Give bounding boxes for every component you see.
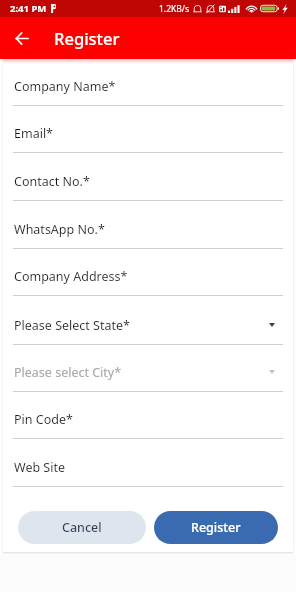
button[interactable]: Register (154, 511, 278, 544)
button[interactable]: Please Select State* (13, 59, 283, 345)
staticText: Company Address* (14, 268, 128, 285)
staticText: Cancel (62, 519, 102, 536)
staticText: Company Name* (14, 78, 116, 95)
staticText: Register (54, 27, 120, 49)
staticText: Web Site (14, 459, 66, 476)
staticText: Contact No.* (14, 173, 90, 190)
button[interactable]: Contact No.* (13, 59, 283, 201)
staticText: 2:41 PM (10, 2, 47, 15)
staticText: Register (191, 519, 241, 536)
button[interactable]: Company Name* (13, 59, 283, 106)
staticText: Email* (14, 125, 53, 142)
staticText: 1.2KB/s (159, 3, 190, 15)
button[interactable]: Company Address* (13, 59, 283, 296)
staticText: WhatsApp No.* (14, 221, 105, 238)
button[interactable]: Back (1, 17, 42, 59)
button[interactable]: Web Site (13, 59, 283, 487)
button[interactable]: Email* (13, 59, 283, 153)
button[interactable]: Pin Code* (13, 59, 283, 439)
staticText: Please select City* (14, 364, 122, 381)
staticText: Pin Code* (14, 411, 73, 428)
button[interactable]: WhatsApp No.* (13, 59, 283, 249)
button[interactable]: Cancel (18, 511, 146, 544)
button[interactable]: Please select City* (13, 59, 283, 392)
staticText: Please Select State* (14, 317, 130, 334)
